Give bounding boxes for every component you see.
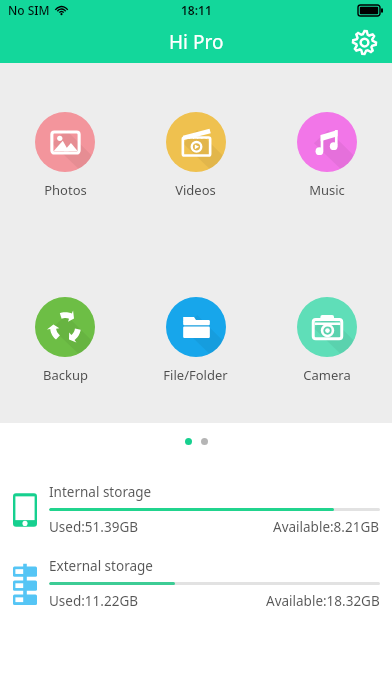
- staticText: Videos: [175, 181, 216, 199]
- staticText: Used:11.22GB: [49, 592, 138, 610]
- button[interactable]: External storage: [0, 557, 392, 610]
- staticText: Photos: [44, 181, 87, 199]
- button[interactable]: File/Folder: [130, 295, 261, 386]
- staticText: Hi Pro: [169, 29, 224, 55]
- staticText: Used:51.39GB: [49, 518, 138, 536]
- staticText: Backup: [43, 366, 88, 384]
- button[interactable]: Music: [261, 110, 392, 201]
- button[interactable]: Photos: [0, 110, 130, 201]
- button[interactable]: Internal storage: [0, 483, 392, 536]
- button[interactable]: Backup: [0, 295, 130, 386]
- staticText: Music: [309, 181, 345, 199]
- button[interactable]: Page 1: [185, 438, 192, 445]
- staticText: 18:11: [181, 2, 212, 18]
- staticText: Internal storage: [49, 483, 152, 501]
- button[interactable]: Page 2: [201, 438, 208, 445]
- staticText: Camera: [303, 366, 351, 384]
- staticText: Available:8.21GB: [273, 518, 380, 536]
- staticText: Available:18.32GB: [266, 592, 380, 610]
- button[interactable]: Settings: [347, 25, 381, 59]
- button[interactable]: Videos: [130, 110, 261, 201]
- staticText: No SIM: [8, 2, 50, 18]
- staticText: External storage: [49, 557, 153, 575]
- staticText: File/Folder: [163, 366, 228, 384]
- button[interactable]: Camera: [261, 295, 392, 386]
